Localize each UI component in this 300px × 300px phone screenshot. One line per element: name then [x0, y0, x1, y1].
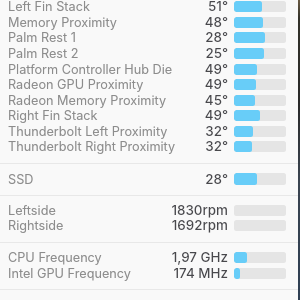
staticText: Memory Proximity: [8, 15, 117, 30]
staticText: Thunderbolt Left Proximity: [8, 124, 168, 139]
button[interactable]: CPU Frequency: [0, 249, 300, 265]
button[interactable]: Palm Rest 2: [0, 45, 300, 61]
button[interactable]: Radeon GPU Proximity: [0, 76, 300, 92]
button[interactable]: Right Fin Stack: [0, 107, 300, 123]
staticText: Palm Rest 1: [8, 30, 76, 45]
button[interactable]: Thunderbolt Left Proximity: [0, 123, 300, 139]
staticText: Palm Rest 2: [8, 46, 79, 61]
staticText: Radeon Memory Proximity: [8, 93, 167, 108]
staticText: CPU Frequency: [8, 250, 102, 265]
button[interactable]: Left Fin Stack: [0, 0, 300, 14]
staticText: Leftside: [8, 203, 56, 218]
button[interactable]: Leftside: [0, 202, 300, 218]
staticText: 45°: [108, 92, 228, 108]
staticText: Platform Controller Hub Die: [8, 62, 173, 77]
staticText: Thunderbolt Right Proximity: [8, 139, 176, 154]
staticText: 1692rpm: [108, 217, 228, 233]
staticText: SSD: [8, 172, 34, 187]
staticText: 49°: [108, 76, 228, 92]
staticText: 49°: [108, 107, 228, 123]
staticText: 25°: [108, 45, 228, 61]
staticText: 1,97 GHz: [108, 249, 228, 265]
staticText: 49°: [108, 61, 228, 77]
button[interactable]: SSD: [0, 169, 300, 189]
button[interactable]: Memory Proximity: [0, 14, 300, 30]
staticText: 1830rpm: [108, 202, 228, 218]
button[interactable]: Rightside: [0, 217, 300, 233]
button[interactable]: Platform Controller Hub Die: [0, 61, 300, 77]
staticText: Intel GPU Frequency: [8, 266, 131, 281]
staticText: 48°: [108, 14, 228, 30]
staticText: Rightside: [8, 218, 64, 233]
staticText: 51°: [108, 0, 228, 14]
staticText: Left Fin Stack: [8, 0, 90, 14]
staticText: 28°: [108, 29, 228, 45]
button[interactable]: Thunderbolt Right Proximity: [0, 138, 300, 154]
staticText: 32°: [108, 123, 228, 139]
button[interactable]: Radeon Memory Proximity: [0, 92, 300, 108]
staticText: 32°: [108, 138, 228, 154]
staticText: 174 MHz: [108, 265, 228, 281]
staticText: 28°: [108, 171, 228, 187]
staticText: Radeon GPU Proximity: [8, 77, 144, 92]
button[interactable]: Palm Rest 1: [0, 29, 300, 45]
staticText: Right Fin Stack: [8, 108, 98, 123]
button[interactable]: Intel GPU Frequency: [0, 265, 300, 281]
